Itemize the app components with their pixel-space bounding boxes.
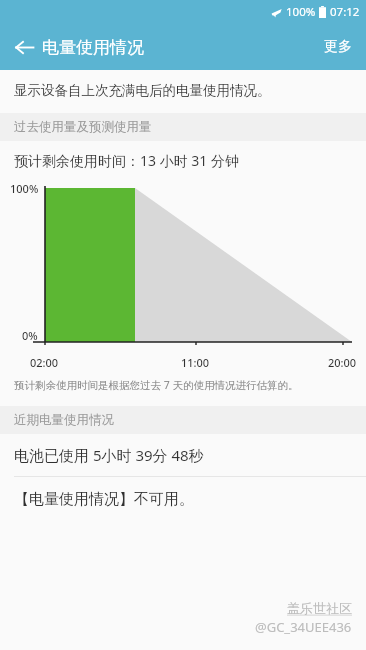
staticText: 更多 [324,38,352,56]
staticText: 电池已使用 5小时 39分 48秒 [14,445,204,465]
staticText: 11:00 [181,355,210,370]
staticText: 20:00 [328,355,357,370]
staticText: @GC_34UEE436 [255,618,352,636]
button[interactable]: 电池已使用 5小时 39分 48秒 [0,434,366,476]
staticText: 100% [10,181,39,196]
staticText: 07:12 [330,4,360,20]
button[interactable]: 更多 [310,24,366,70]
staticText: 盖乐世社区 [287,600,352,616]
staticText: 电量使用情况 [42,37,144,58]
staticText: 预计剩余使用时间：13 小时 31 分钟 [14,151,239,170]
staticText: 0% [22,328,38,343]
staticText: 过去使用量及预测使用量 [14,119,152,135]
staticText: 100% [286,4,316,20]
staticText: 预计剩余使用时间是根据您过去 7 天的使用情况进行估算的。 [14,378,299,392]
button[interactable]: 返回 [8,31,40,63]
staticText: 近期电量使用情况 [14,412,114,428]
staticText: 【电量使用情况】不可用。 [14,490,194,509]
button[interactable]: 【电量使用情况】不可用。 [0,477,366,521]
staticText: 显示设备自上次充满电后的电量使用情况。 [14,82,271,99]
staticText: 02:00 [30,355,59,370]
